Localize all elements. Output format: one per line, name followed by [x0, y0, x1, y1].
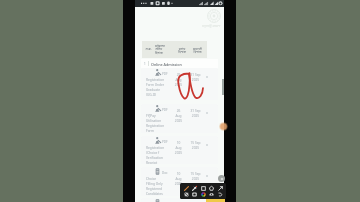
button[interactable]: PDF — [141, 136, 218, 164]
button[interactable]: Undo — [217, 191, 224, 197]
staticText: Registration /Choice f Verification Rece… — [146, 146, 174, 164]
staticText: प्रारंभ दिनांक — [176, 46, 188, 54]
staticText: 31 Sep 2025 — [188, 73, 203, 82]
staticText: 31 Sep 2025 — [188, 109, 203, 118]
button[interactable]: Polygon — [208, 185, 215, 191]
staticText: 25 Aug 2025 — [173, 73, 184, 87]
button[interactable]: Add — [219, 122, 228, 131]
staticText: Doc — [162, 171, 168, 175]
button[interactable]: Eraser — [183, 191, 190, 197]
button[interactable]: Arrow — [217, 185, 224, 191]
button[interactable]: Pen — [183, 185, 190, 191]
staticText: समाप्ती दिनांक — [191, 46, 204, 54]
staticText: 1 — [144, 62, 146, 66]
button[interactable]: Highlighter — [191, 185, 198, 191]
button[interactable]: Doc — [141, 167, 218, 196]
staticText: PDF — [162, 108, 168, 112]
button[interactable]: Rectangle — [200, 185, 207, 191]
staticText: Online Admission — [151, 62, 182, 67]
staticText: महाराष्ट्र शासन — [202, 23, 221, 28]
staticText: PDF — [162, 72, 168, 76]
staticText: अ.क्र. — [144, 47, 153, 51]
button[interactable]: 1 — [141, 59, 218, 68]
button[interactable]: PDF — [141, 104, 218, 133]
staticText: 10 Aug 2025 — [173, 172, 184, 186]
staticText: FYJPay Utilisation Registration Form — [146, 114, 174, 133]
staticText: 10 Aug 2025 — [173, 141, 184, 155]
button[interactable]: Onlin — [141, 198, 218, 202]
staticText: 15 Sep 2025 — [188, 172, 203, 181]
staticText: 26 Aug 2025 — [173, 109, 184, 123]
button[interactable]: Close toolbar — [218, 175, 225, 182]
button[interactable]: Fill — [208, 191, 215, 197]
button[interactable]: Colour — [200, 191, 207, 197]
staticText: Choice Filling Only Registered Candidate… — [146, 177, 174, 196]
button[interactable]: PDF — [141, 68, 218, 100]
staticText: PDF — [162, 140, 168, 144]
button[interactable]: Screenshot — [191, 191, 198, 197]
staticText: 15 Sep 2025 — [188, 141, 203, 150]
staticText: Registration Form Under Graduate (UG-II) — [146, 78, 174, 97]
staticText: प्रवेशाचा अंतिम दिनांक — [155, 43, 171, 55]
